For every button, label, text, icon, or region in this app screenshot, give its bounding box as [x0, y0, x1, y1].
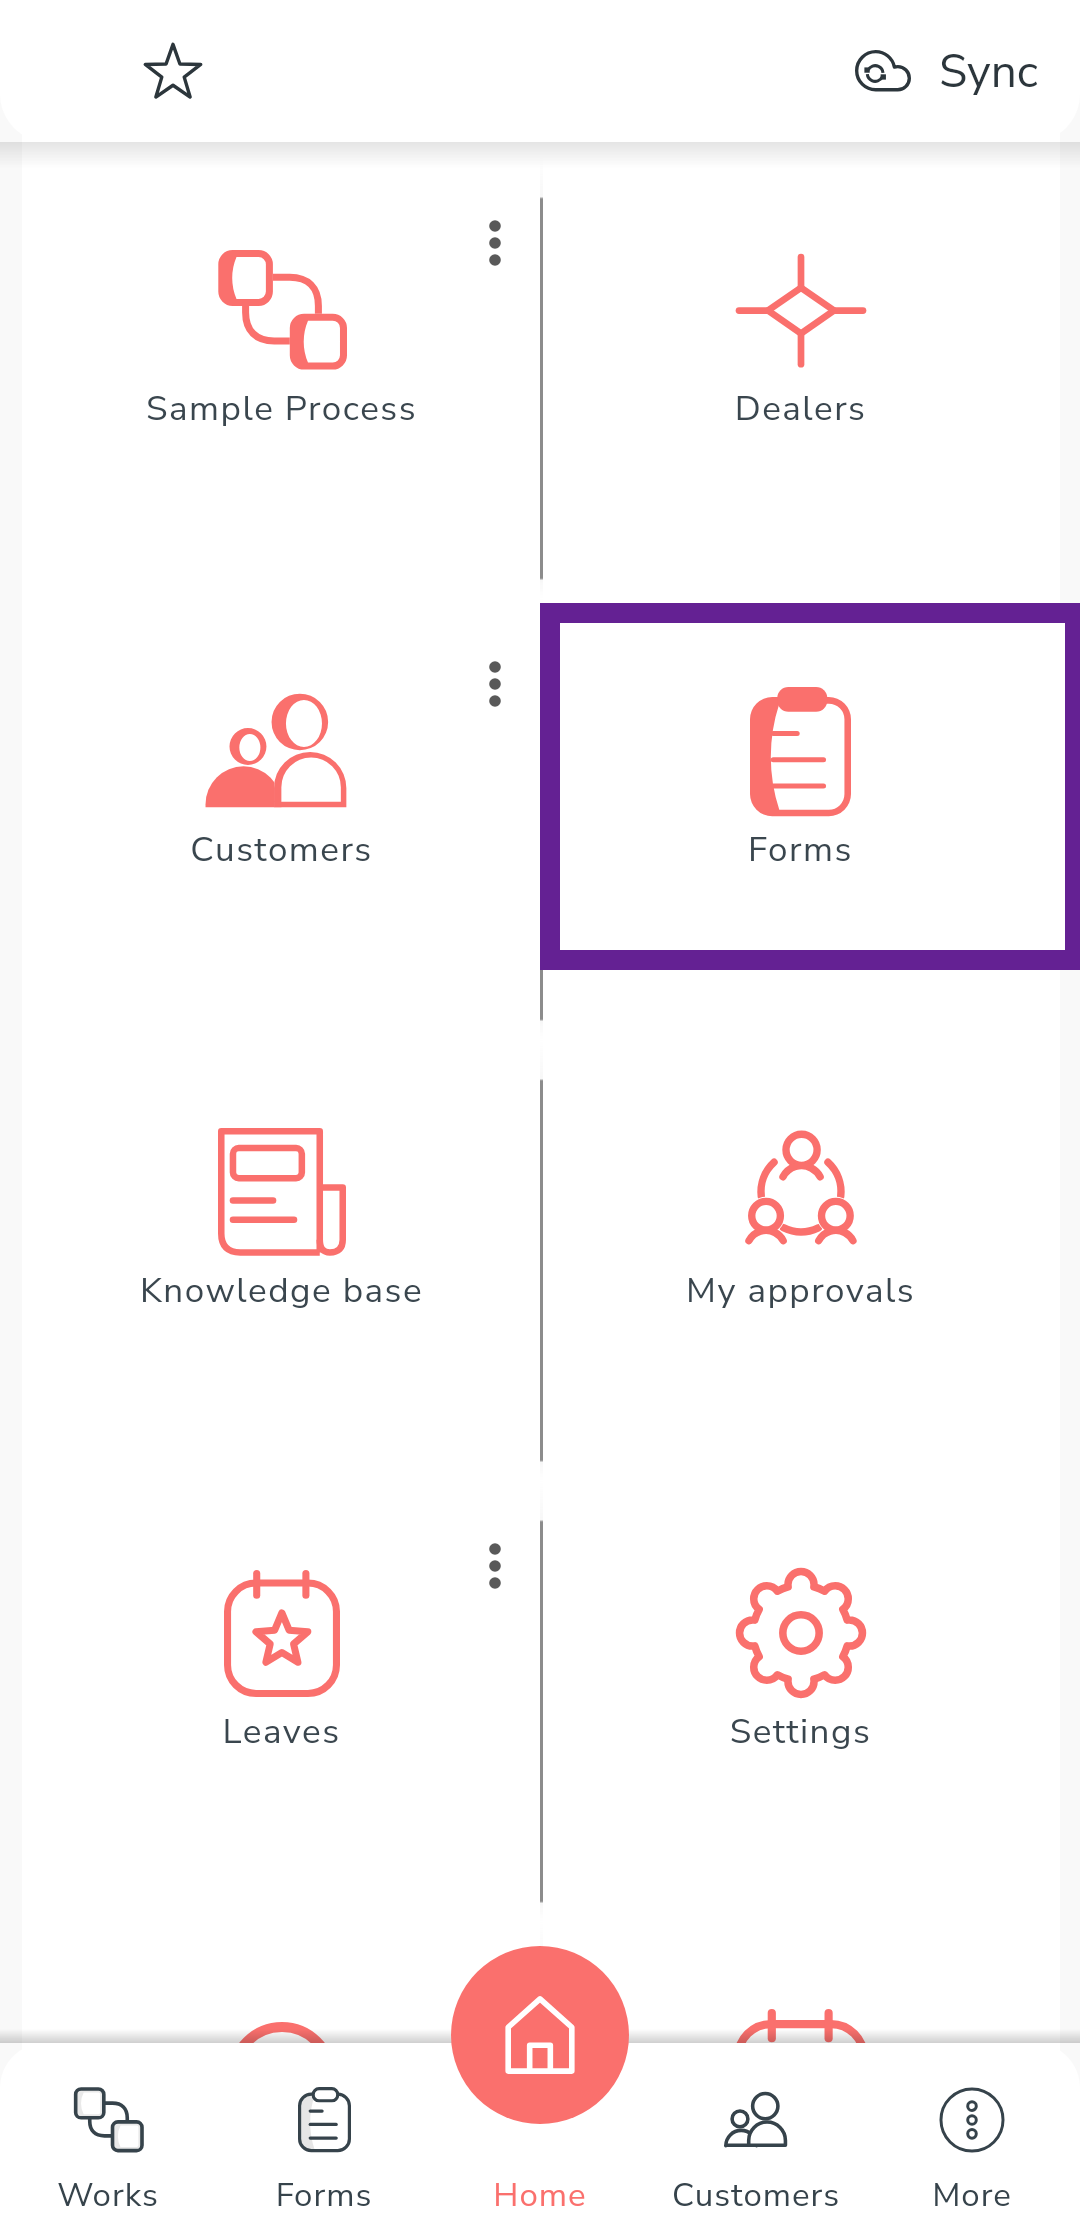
staticText: Dealers: [541, 385, 1060, 433]
button[interactable]: [541, 1921, 1060, 2230]
staticText: My approvals: [541, 1267, 1060, 1315]
button[interactable]: Works: [0, 2043, 216, 2230]
button[interactable]: Home: [432, 2043, 648, 2230]
button[interactable]: Settings: [541, 1480, 1060, 1921]
staticText: More: [864, 2173, 1080, 2218]
staticText: Leaves: [22, 1708, 541, 1756]
staticText: Customers: [648, 2173, 864, 2218]
staticText: Sample Process: [22, 385, 541, 433]
button[interactable]: More options: [453, 642, 537, 726]
button[interactable]: My approvals: [541, 1039, 1060, 1480]
button[interactable]: Home: [451, 1946, 629, 2124]
button[interactable]: Customers: [22, 598, 541, 1039]
button[interactable]: [22, 1921, 541, 2230]
button[interactable]: More options: [453, 1524, 537, 1608]
staticText: Knowledge base: [22, 1267, 541, 1315]
staticText: Sync: [939, 40, 1039, 103]
button[interactable]: Favourites: [118, 16, 228, 126]
button[interactable]: Knowledge base: [22, 1039, 541, 1480]
staticText: Home: [432, 2173, 648, 2218]
button[interactable]: More: [864, 2043, 1080, 2230]
staticText: Forms: [216, 2173, 432, 2218]
staticText: Forms: [541, 826, 1060, 874]
staticText: Settings: [541, 1708, 1060, 1756]
button[interactable]: Dealers: [541, 157, 1060, 598]
button[interactable]: Forms: [216, 2043, 432, 2230]
staticText: Customers: [22, 826, 541, 874]
button[interactable]: More options: [453, 201, 537, 285]
button[interactable]: Leaves: [22, 1480, 541, 1921]
button[interactable]: Forms: [541, 598, 1060, 1039]
button[interactable]: Sample Process: [22, 157, 541, 598]
button[interactable]: Customers: [648, 2043, 864, 2230]
button[interactable]: Forms: [541, 598, 1060, 1039]
staticText: Works: [0, 2173, 216, 2218]
staticText: Forms: [541, 826, 1060, 874]
button[interactable]: Sync: [845, 11, 1049, 131]
